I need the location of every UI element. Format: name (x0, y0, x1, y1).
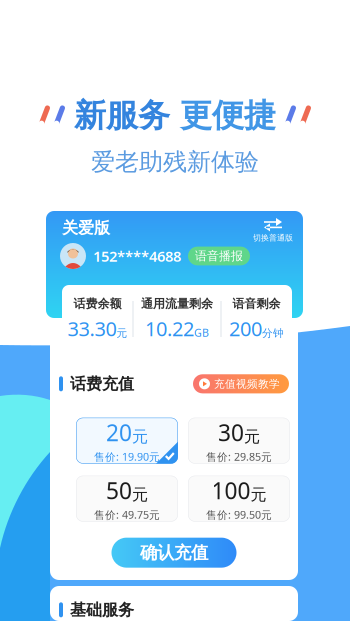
button[interactable]: 充值视频教学 (193, 374, 289, 393)
button[interactable]: 50 (76, 476, 178, 522)
staticText: 语音播报 (195, 249, 243, 263)
staticText: 33.30 (67, 315, 116, 342)
staticText: 20 (106, 417, 132, 448)
button[interactable]: 100 (188, 476, 290, 522)
staticText: 更便捷 (170, 96, 276, 135)
button[interactable]: 30 (188, 418, 290, 464)
staticText: 售价: 49.75元 (94, 508, 160, 522)
staticText: 充值视频教学 (214, 377, 280, 390)
button[interactable]: 确认充值 (111, 538, 236, 568)
staticText: 确认充值 (140, 542, 208, 563)
staticText: 语音剩余 (232, 296, 280, 311)
staticText: GB (194, 325, 209, 340)
staticText: 切换普通版 (253, 233, 293, 243)
staticText: 话费余额 (73, 296, 121, 311)
staticText: 152****4688 (93, 246, 181, 266)
staticText: 10.22 (145, 315, 194, 342)
staticText: 分钟 (262, 326, 284, 340)
staticText: 关爱版 (62, 218, 110, 238)
staticText: 元 (132, 485, 148, 505)
staticText: 200 (229, 315, 262, 342)
staticText: 元 (250, 485, 266, 505)
staticText: 售价: 29.85元 (206, 450, 272, 464)
staticText: 50 (106, 475, 132, 506)
button[interactable]: 20 (76, 418, 178, 464)
staticText: 元 (116, 326, 127, 340)
staticText: 话费充值 (70, 374, 134, 394)
staticText: 售价: 99.50元 (206, 508, 272, 522)
staticText: 30 (218, 417, 244, 448)
button[interactable]: 语音播报 (188, 247, 250, 265)
button[interactable]: 切换普通版 (251, 218, 295, 243)
staticText: 通用流量剩余 (141, 296, 213, 311)
staticText: 元 (244, 427, 260, 447)
staticText: 元 (132, 427, 148, 447)
staticText: 爱老助残新体验 (91, 147, 259, 177)
staticText: 售价: 19.90元 (94, 450, 160, 464)
staticText: 100 (211, 475, 250, 506)
staticText: 新服务 (74, 96, 170, 135)
staticText: 基础服务 (70, 600, 134, 620)
